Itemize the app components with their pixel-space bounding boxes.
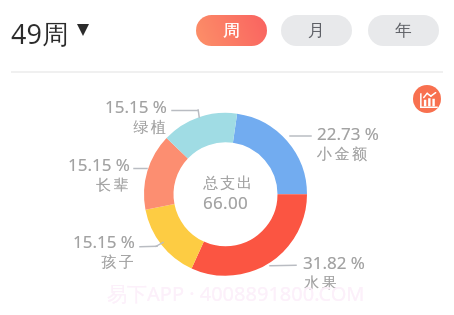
staticText: 易下APP · 4008891800.COM bbox=[107, 280, 365, 307]
staticText: 31.82 % bbox=[303, 251, 365, 274]
staticText: 周 bbox=[223, 20, 240, 41]
staticText: 绿植 bbox=[132, 118, 167, 137]
staticText: 孩子 bbox=[100, 253, 135, 272]
staticText: 水果 bbox=[303, 274, 338, 293]
button[interactable]: 年 bbox=[368, 15, 439, 46]
staticText: 15.15 % bbox=[105, 95, 167, 118]
staticText: 总支出 bbox=[203, 174, 254, 193]
button[interactable]: 月 bbox=[281, 15, 352, 46]
staticText: 15.15 % bbox=[68, 153, 130, 176]
staticText: 49周 bbox=[11, 15, 69, 52]
button[interactable]: Statistics chart bbox=[413, 85, 441, 113]
button[interactable]: 49周 bbox=[9, 13, 91, 54]
staticText: 小金额 bbox=[317, 145, 370, 164]
staticText: 长辈 bbox=[95, 176, 130, 195]
staticText: 22.73 % bbox=[317, 122, 379, 145]
staticText: 月 bbox=[308, 20, 325, 41]
staticText: 15.15 % bbox=[73, 230, 135, 253]
staticText: 年 bbox=[395, 20, 412, 41]
button[interactable]: 周 bbox=[196, 15, 267, 46]
staticText: 66.00 bbox=[203, 191, 248, 214]
